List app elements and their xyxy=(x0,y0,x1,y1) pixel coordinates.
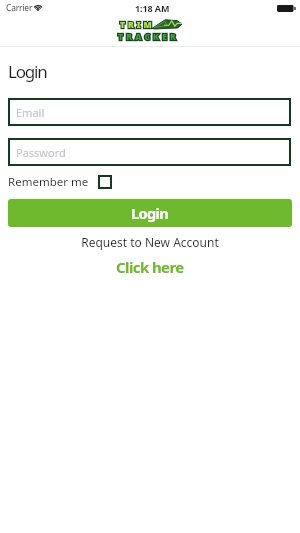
staticText: TRIM xyxy=(120,19,155,31)
staticText: TRACKER xyxy=(118,31,179,43)
staticText: Click here xyxy=(116,257,184,276)
button[interactable]: Click here xyxy=(0,257,300,276)
staticText: TRACKER xyxy=(118,31,179,43)
staticText: Remember me xyxy=(8,174,89,189)
button[interactable]: Password xyxy=(8,138,291,166)
other: Battery full xyxy=(277,5,295,12)
staticText: TRIM xyxy=(120,19,155,31)
staticText: Login xyxy=(131,203,169,223)
button[interactable]: Email xyxy=(8,98,291,126)
staticText: Login xyxy=(8,60,47,83)
button[interactable]: Login xyxy=(8,199,292,227)
staticText: 1:18 AM xyxy=(135,2,170,14)
staticText: Request to New Account xyxy=(0,234,300,250)
button[interactable]: Remember me xyxy=(8,174,112,189)
staticText: Email xyxy=(16,105,45,120)
staticText: Carrier xyxy=(6,2,33,14)
other: Wi-Fi signal xyxy=(33,4,43,11)
staticText: Password xyxy=(16,145,66,160)
